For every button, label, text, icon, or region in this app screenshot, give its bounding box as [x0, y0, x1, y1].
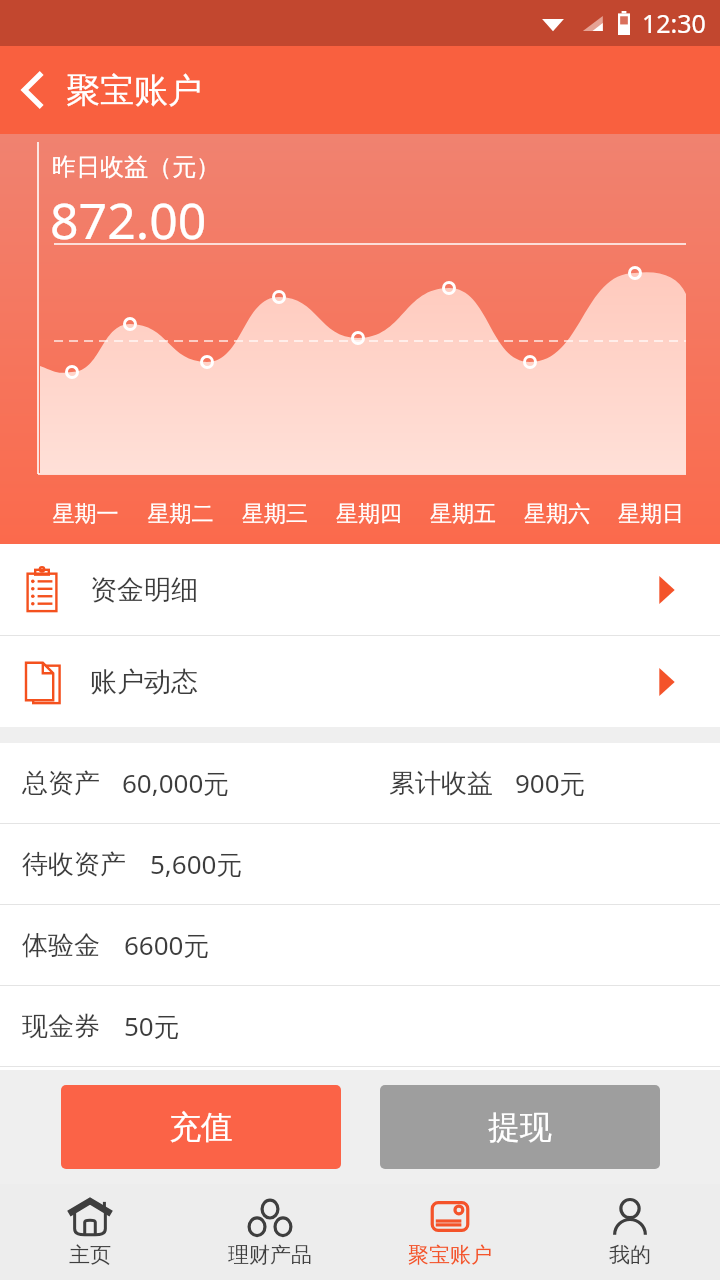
staticText: 星期二	[133, 500, 228, 528]
staticText: 50元	[124, 1008, 180, 1044]
staticText: 体验金	[22, 929, 100, 962]
staticText: 星期四	[322, 500, 416, 528]
button[interactable]: 聚宝账户	[360, 1184, 540, 1280]
staticText: 星期一	[38, 500, 133, 528]
staticText: 待收资产	[22, 848, 126, 881]
staticText: 账户动态	[90, 665, 198, 699]
staticText: 星期六	[510, 500, 604, 528]
staticText: 5,600元	[150, 846, 243, 882]
button[interactable]: 充值	[61, 1085, 341, 1169]
staticText: 6600元	[124, 927, 210, 963]
button[interactable]: 提现	[380, 1085, 660, 1169]
button[interactable]: 我的	[540, 1184, 720, 1280]
button[interactable]: Back	[6, 62, 62, 118]
button[interactable]: 体验金	[0, 905, 720, 985]
staticText: 60,000元	[122, 765, 230, 801]
button[interactable]: 待收资产	[0, 824, 720, 904]
staticText: 星期三	[228, 500, 322, 528]
staticText: 星期五	[416, 500, 510, 528]
button[interactable]: 总资产	[0, 743, 720, 823]
staticText: 872.00	[50, 186, 207, 254]
button[interactable]: 账户动态	[0, 636, 720, 727]
staticText: 12:30	[642, 6, 706, 40]
staticText: 理财产品	[228, 1242, 312, 1268]
button[interactable]: 理财产品	[180, 1184, 360, 1280]
staticText: 提现	[488, 1107, 552, 1147]
button[interactable]: 现金券	[0, 986, 720, 1066]
staticText: 我的	[609, 1242, 651, 1268]
staticText: 现金券	[22, 1010, 100, 1043]
staticText: 主页	[69, 1242, 111, 1268]
staticText: 总资产	[22, 767, 100, 800]
staticText: 充值	[169, 1107, 233, 1147]
staticText: 900元	[515, 765, 586, 801]
staticText: 聚宝账户	[66, 69, 202, 112]
staticText: 累计收益	[389, 767, 493, 800]
staticText: 聚宝账户	[408, 1242, 492, 1268]
staticText: 星期日	[604, 500, 698, 528]
button[interactable]: 资金明细	[0, 544, 720, 635]
staticText: 资金明细	[90, 573, 198, 607]
staticText: 昨日收益（元）	[52, 152, 220, 182]
button[interactable]: 主页	[0, 1184, 180, 1280]
